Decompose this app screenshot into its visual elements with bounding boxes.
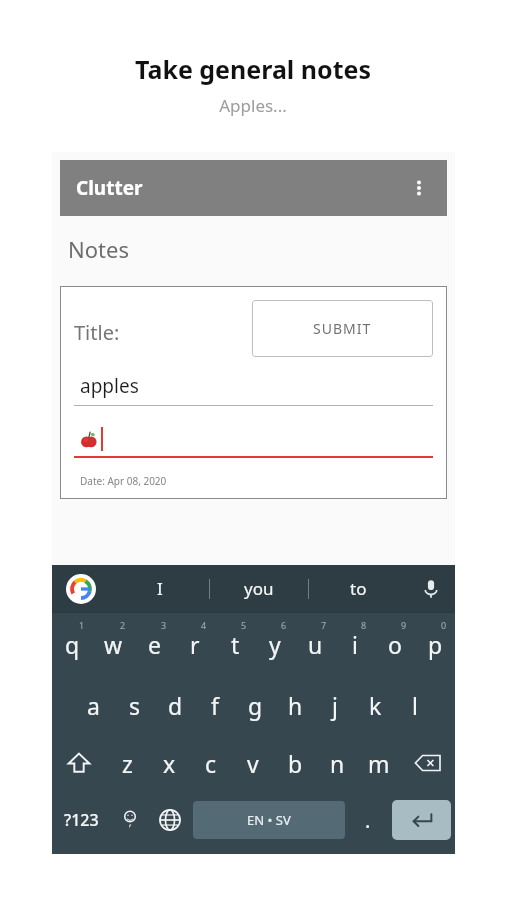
button[interactable]: m (358, 734, 400, 792)
button[interactable]: d (155, 676, 195, 734)
button[interactable]: EN • SV (193, 801, 345, 839)
button[interactable]: Google (52, 565, 110, 612)
staticText: m (368, 748, 390, 779)
button[interactable]: l (395, 676, 435, 734)
staticText: a (87, 690, 100, 721)
button[interactable]: o (375, 613, 415, 676)
button[interactable]: k (355, 676, 395, 734)
staticText: n (330, 748, 345, 779)
button[interactable]: . (348, 792, 388, 848)
staticText: j (332, 690, 338, 721)
button[interactable]: t (215, 613, 255, 676)
button[interactable]: a (73, 676, 114, 734)
staticText: 6 (281, 619, 287, 631)
staticText: to (350, 577, 367, 600)
staticText: h (288, 690, 303, 721)
staticText: e (148, 629, 161, 660)
staticText: q (65, 629, 80, 660)
button[interactable]: you (210, 565, 308, 612)
staticText: Notes (68, 234, 129, 264)
button[interactable]: Emoji (110, 792, 150, 848)
staticText: EN • SV (247, 811, 291, 829)
staticText: t (231, 629, 240, 660)
button[interactable]: c (190, 734, 232, 792)
button[interactable]: v (232, 734, 274, 792)
staticText: f (211, 690, 219, 721)
staticText: k (369, 690, 382, 721)
button[interactable]: p (415, 613, 455, 676)
staticText: Apples... (0, 94, 506, 117)
staticText: . (365, 807, 371, 834)
button[interactable]: Change language (150, 792, 190, 848)
staticText: 3 (161, 619, 167, 631)
button[interactable]: g (235, 676, 275, 734)
button[interactable]: x (148, 734, 190, 792)
staticText: 1 (79, 619, 85, 631)
staticText: r (190, 629, 200, 660)
button[interactable]: u (295, 613, 335, 676)
button[interactable]: to (309, 565, 407, 612)
staticText: c (205, 748, 217, 779)
staticText: Date: Apr 08, 2020 (80, 474, 167, 488)
staticText: z (122, 748, 133, 779)
staticText: Title: (74, 319, 120, 346)
staticText: 0 (441, 619, 447, 631)
button[interactable]: j (315, 676, 355, 734)
staticText: b (288, 748, 303, 779)
button[interactable]: e (134, 613, 175, 676)
button[interactable]: Clutter (60, 160, 447, 216)
button[interactable]: i (335, 613, 375, 676)
button[interactable]: Title: (60, 286, 447, 499)
staticText: d (168, 690, 183, 721)
button[interactable]: h (275, 676, 315, 734)
staticText: g (248, 690, 263, 721)
staticText: o (388, 629, 402, 660)
staticText: 8 (361, 619, 367, 631)
staticText: SUBMIT (313, 319, 372, 338)
button[interactable]: q (52, 613, 93, 676)
staticText: ?123 (64, 809, 99, 831)
button[interactable]: s (114, 676, 155, 734)
staticText: I (157, 577, 163, 600)
staticText: u (308, 629, 323, 660)
staticText: y (269, 629, 281, 660)
button[interactable]: n (316, 734, 358, 792)
staticText: i (352, 629, 358, 660)
button[interactable]: More options (399, 168, 439, 208)
button[interactable]: ?123 (52, 792, 110, 848)
button[interactable]: r (175, 613, 215, 676)
staticText: w (104, 629, 123, 660)
button[interactable]: SUBMIT (252, 300, 433, 357)
button[interactable]: Enter (392, 800, 451, 840)
staticText: apples (80, 373, 139, 399)
staticText: you (244, 577, 274, 600)
staticText: Clutter (76, 175, 143, 201)
staticText: s (129, 690, 141, 721)
staticText: 5 (241, 619, 247, 631)
staticText: 9 (401, 619, 407, 631)
button[interactable]: Backspace (400, 734, 455, 792)
button[interactable]: Shift (52, 734, 106, 792)
button[interactable]: z (106, 734, 148, 792)
button[interactable]: w (93, 613, 134, 676)
staticText: x (163, 748, 176, 779)
button[interactable]: b (274, 734, 316, 792)
staticText: v (247, 748, 259, 779)
staticText: Take general notes (0, 52, 506, 86)
staticText: 4 (201, 619, 207, 631)
staticText: l (412, 690, 418, 721)
staticText: 7 (321, 619, 327, 631)
button[interactable]: y (255, 613, 295, 676)
staticText: p (428, 629, 443, 660)
button[interactable]: I (110, 565, 209, 612)
staticText: 2 (120, 619, 126, 631)
button[interactable]: Voice input (407, 565, 455, 612)
button[interactable]: f (195, 676, 235, 734)
